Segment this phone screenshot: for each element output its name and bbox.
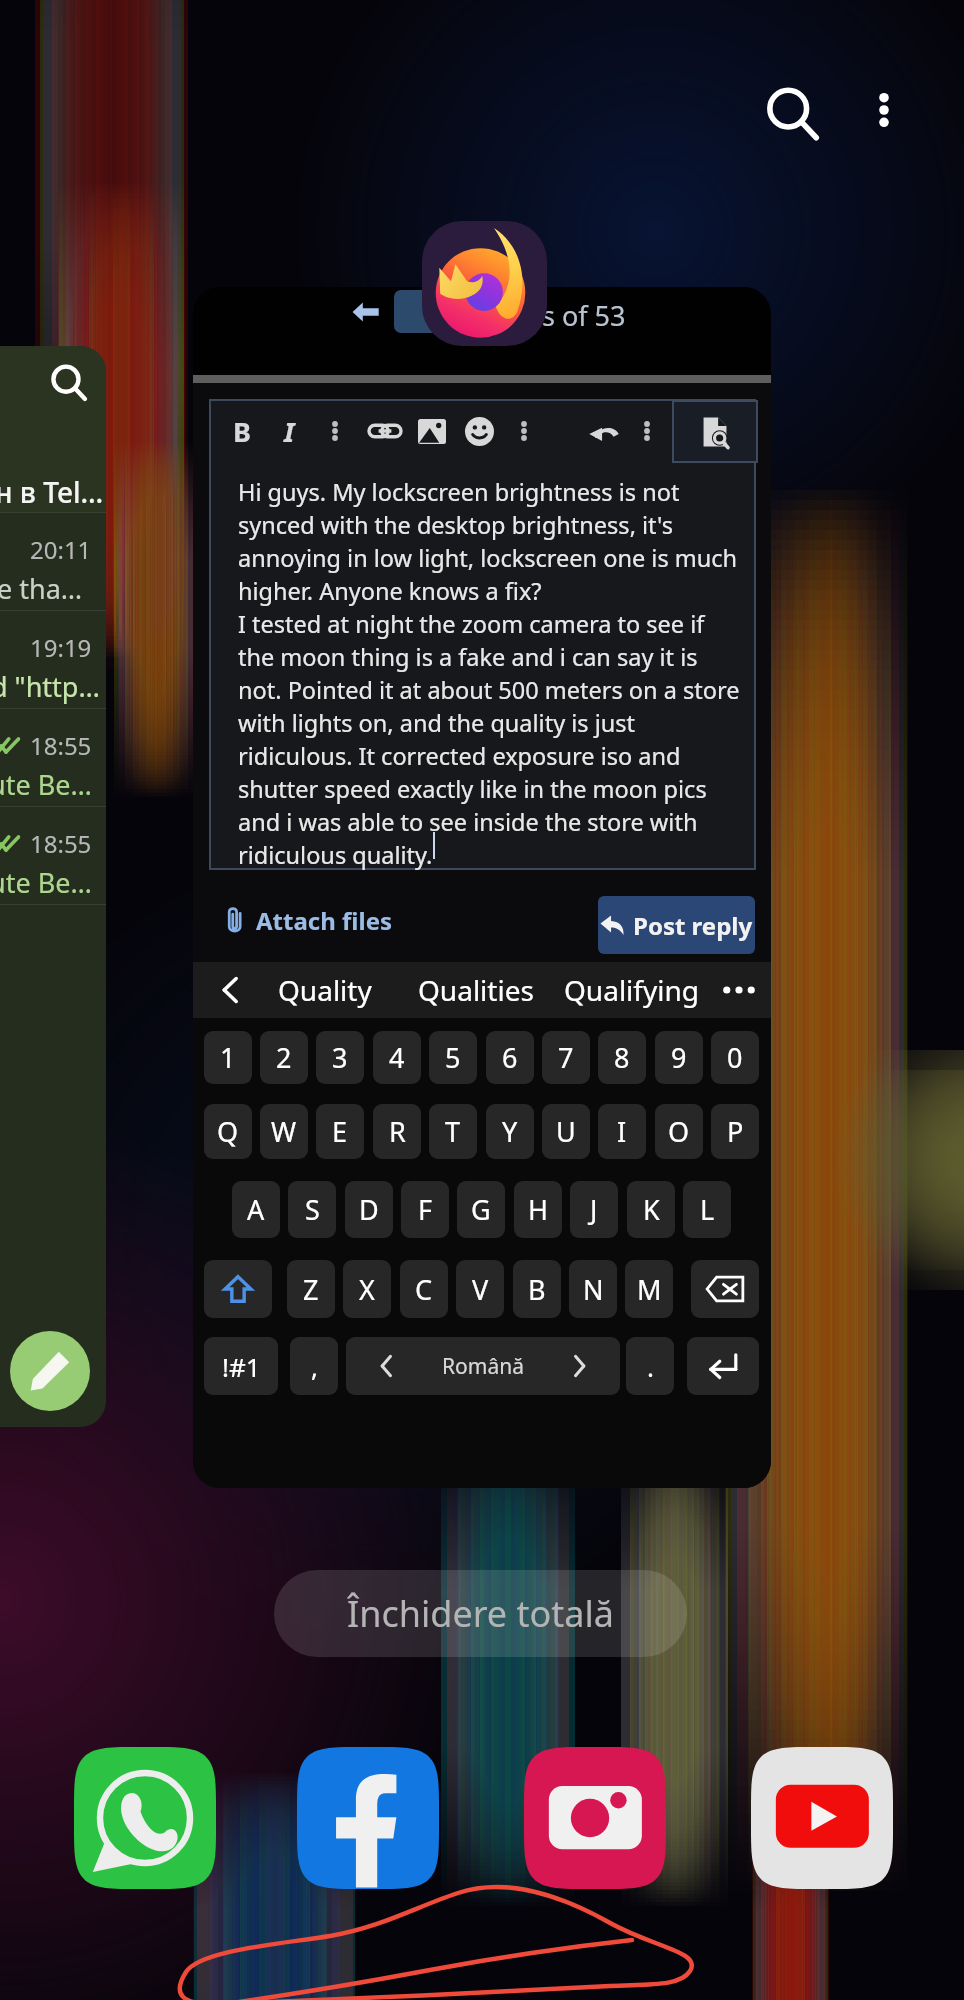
button[interactable]: Quality	[278, 962, 372, 1018]
staticText: M	[637, 1271, 662, 1308]
button[interactable]: Bold	[216, 405, 268, 457]
staticText: I	[617, 1113, 627, 1150]
button[interactable]: Insert emoji	[453, 405, 505, 457]
staticText: S	[305, 1191, 320, 1228]
staticText: н в Tel…	[0, 473, 104, 511]
button[interactable]: 6	[486, 1031, 534, 1084]
button[interactable]: Insert image	[406, 405, 458, 457]
button[interactable]: YouTube	[751, 1747, 893, 1889]
button[interactable]: Facebook	[297, 1747, 439, 1889]
button[interactable]: 19:19	[0, 610, 106, 708]
button[interactable]: Qualities	[418, 962, 534, 1018]
button[interactable]: 2	[260, 1031, 308, 1084]
button[interactable]: Y	[486, 1104, 534, 1159]
button[interactable]: B	[513, 1260, 561, 1318]
button[interactable]: Shift	[204, 1260, 272, 1318]
button[interactable]: O	[655, 1104, 703, 1159]
button[interactable]: M	[625, 1260, 673, 1318]
staticText: 18:55	[30, 827, 92, 860]
button[interactable]: H	[514, 1181, 562, 1238]
button[interactable]: Previous suggestions	[203, 962, 259, 1018]
staticText: d "http…	[0, 668, 100, 705]
button[interactable]: 4	[373, 1031, 421, 1084]
button[interactable]: н в Tel…	[0, 420, 106, 512]
button[interactable]: G	[457, 1181, 505, 1238]
button[interactable]: N	[569, 1260, 617, 1318]
button[interactable]: New chat	[10, 1331, 90, 1411]
button[interactable]: Backspace	[691, 1260, 759, 1318]
button[interactable]: !#1	[204, 1337, 278, 1395]
staticText: 0	[727, 1039, 743, 1076]
button[interactable]: Firefox	[422, 221, 547, 346]
button[interactable]: Search chats	[0, 346, 106, 1427]
button[interactable]: Q	[204, 1104, 252, 1159]
button[interactable]: A	[232, 1181, 280, 1238]
button[interactable]: 18:55	[0, 708, 106, 806]
staticText: Qualifying	[564, 971, 699, 1009]
button[interactable]: Back	[193, 287, 771, 1488]
button[interactable]: J	[570, 1181, 618, 1238]
button[interactable]: .	[626, 1337, 674, 1395]
button[interactable]: E	[316, 1104, 364, 1159]
button[interactable]: Search chats	[41, 355, 97, 411]
button[interactable]: Search	[744, 66, 840, 162]
staticText: Q	[217, 1113, 239, 1150]
button[interactable]: 0	[711, 1031, 759, 1084]
staticText: V	[472, 1271, 489, 1308]
button[interactable]: D	[345, 1181, 393, 1238]
staticText: F	[418, 1191, 433, 1228]
button[interactable]: WhatsApp	[74, 1747, 216, 1889]
staticText: ,	[311, 1349, 318, 1384]
button[interactable]: ,	[290, 1337, 338, 1395]
button[interactable]: 20:11	[0, 512, 106, 610]
button[interactable]: P	[711, 1104, 759, 1159]
button[interactable]: More options	[840, 66, 928, 154]
staticText: Y	[502, 1113, 518, 1150]
button[interactable]: 1	[204, 1031, 252, 1084]
button[interactable]: Enter	[687, 1337, 759, 1395]
button[interactable]: T	[429, 1104, 477, 1159]
button[interactable]: C	[400, 1260, 448, 1318]
button[interactable]: Post reply	[598, 896, 755, 954]
button[interactable]: K	[627, 1181, 675, 1238]
button[interactable]: Închidere totală	[274, 1570, 687, 1657]
staticText: 1	[220, 1039, 236, 1076]
button[interactable]: Attach files	[227, 885, 393, 955]
button[interactable]: Z	[287, 1260, 335, 1318]
button[interactable]: More suggestions	[711, 962, 767, 1018]
button[interactable]: X	[343, 1260, 391, 1318]
button[interactable]: V	[456, 1260, 504, 1318]
button[interactable]: Space	[346, 1337, 620, 1395]
button[interactable]: L	[683, 1181, 731, 1238]
button[interactable]: Insert link	[359, 405, 411, 457]
button[interactable]: 8	[598, 1031, 646, 1084]
staticText: 5	[445, 1039, 461, 1076]
button[interactable]: Instagram	[524, 1747, 666, 1889]
staticText: O	[668, 1113, 690, 1150]
staticText: Attach files	[256, 904, 393, 937]
button[interactable]: 5	[429, 1031, 477, 1084]
button[interactable]: F	[401, 1181, 449, 1238]
button[interactable]: Preview	[673, 401, 757, 462]
button[interactable]: Back	[341, 288, 389, 336]
staticText: B	[233, 413, 251, 450]
button[interactable]: S	[288, 1181, 336, 1238]
button[interactable]: 9	[655, 1031, 703, 1084]
staticText: 9	[671, 1039, 687, 1076]
staticText: 6	[502, 1039, 518, 1076]
staticText: 19:19	[30, 631, 92, 664]
staticText: R	[389, 1113, 406, 1150]
button[interactable]: U	[542, 1104, 590, 1159]
staticText: .	[647, 1349, 654, 1384]
button[interactable]: Undo	[578, 405, 630, 457]
button[interactable]: W	[260, 1104, 308, 1159]
button[interactable]: 3	[316, 1031, 364, 1084]
staticText: Qualities	[418, 971, 534, 1009]
button[interactable]: Italic	[263, 405, 315, 457]
button[interactable]: I	[598, 1104, 646, 1159]
button[interactable]: 18:55	[0, 806, 106, 904]
staticText: X	[359, 1271, 375, 1308]
button[interactable]: 7	[542, 1031, 590, 1084]
button[interactable]: R	[373, 1104, 421, 1159]
button[interactable]: Qualifying	[564, 962, 699, 1018]
